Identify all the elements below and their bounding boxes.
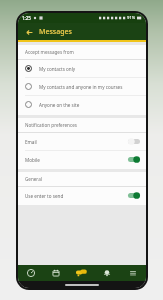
staticText: Notification preferences — [25, 122, 77, 128]
button[interactable]: Back — [23, 26, 35, 38]
button[interactable]: Calendar — [43, 265, 68, 281]
button[interactable]: Use enter to send — [18, 187, 146, 204]
button[interactable]: Dashboard — [18, 265, 43, 281]
button[interactable]: My contacts only — [18, 60, 146, 77]
staticText: Use enter to send — [25, 193, 64, 199]
button[interactable]: Mobile — [18, 151, 146, 168]
button[interactable]: Notifications — [94, 265, 120, 281]
button[interactable]: More — [120, 265, 146, 281]
button[interactable]: Email — [18, 133, 146, 150]
staticText: 1:25 — [22, 15, 31, 21]
staticText: Email — [25, 139, 37, 145]
button[interactable]: Anyone on the site — [18, 96, 146, 113]
button[interactable]: My contacts and anyone in my courses — [18, 78, 146, 95]
staticText: My contacts only — [39, 66, 76, 72]
staticText: Messages — [39, 27, 73, 37]
button[interactable]: Messages — [68, 265, 94, 281]
staticText: My contacts and anyone in my courses — [39, 84, 123, 90]
staticText: Accept messages from — [25, 49, 74, 55]
staticText: Mobile — [25, 157, 40, 163]
staticText: 91% — [127, 15, 136, 21]
staticText: Anyone on the site — [39, 102, 80, 108]
staticText: General — [25, 176, 42, 182]
